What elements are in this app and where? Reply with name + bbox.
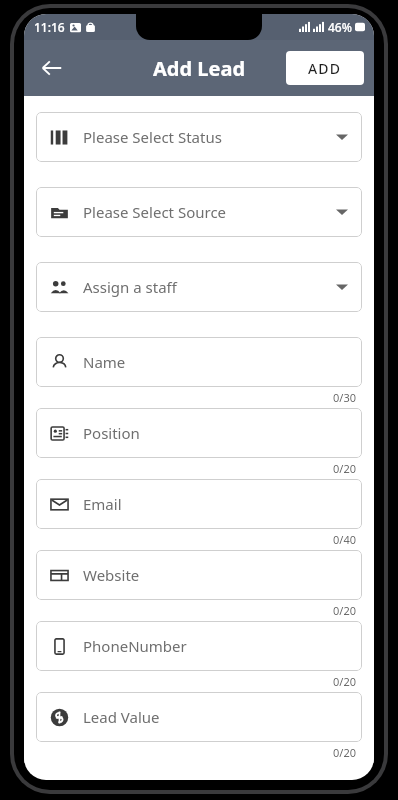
button[interactable]: Website	[36, 550, 362, 600]
staticText: Email	[83, 494, 348, 514]
button[interactable]: Email	[36, 479, 362, 529]
staticText: Position	[83, 423, 348, 443]
staticText: 0/20	[333, 461, 356, 476]
staticText: 0/20	[333, 603, 356, 618]
staticText: 11:16	[34, 19, 65, 35]
staticText: Please Select Source	[83, 202, 336, 222]
button[interactable]: Position	[36, 408, 362, 458]
button[interactable]: Please Select Source	[36, 187, 362, 237]
staticText: 0/30	[333, 390, 356, 405]
staticText: 46%	[328, 19, 352, 35]
button[interactable]: Assign a staff	[36, 262, 362, 312]
staticText: Please Select Status	[83, 127, 336, 147]
staticText: 0/40	[333, 532, 356, 547]
staticText: Name	[83, 352, 348, 372]
button[interactable]: Lead Value	[36, 692, 362, 742]
staticText: 0/20	[333, 745, 356, 760]
button[interactable]: PhoneNumber	[36, 621, 362, 671]
staticText: Lead Value	[83, 707, 348, 727]
staticText: PhoneNumber	[83, 636, 348, 656]
button[interactable]: Name	[36, 337, 362, 387]
staticText: ADD	[308, 59, 342, 78]
button[interactable]: Please Select Status	[36, 112, 362, 162]
staticText: Website	[83, 565, 348, 585]
button[interactable]: ADD	[286, 51, 364, 85]
staticText: 0/20	[333, 674, 356, 689]
staticText: Assign a staff	[83, 277, 336, 297]
staticText: Add Lead	[153, 55, 246, 82]
button[interactable]: Back	[30, 46, 74, 90]
